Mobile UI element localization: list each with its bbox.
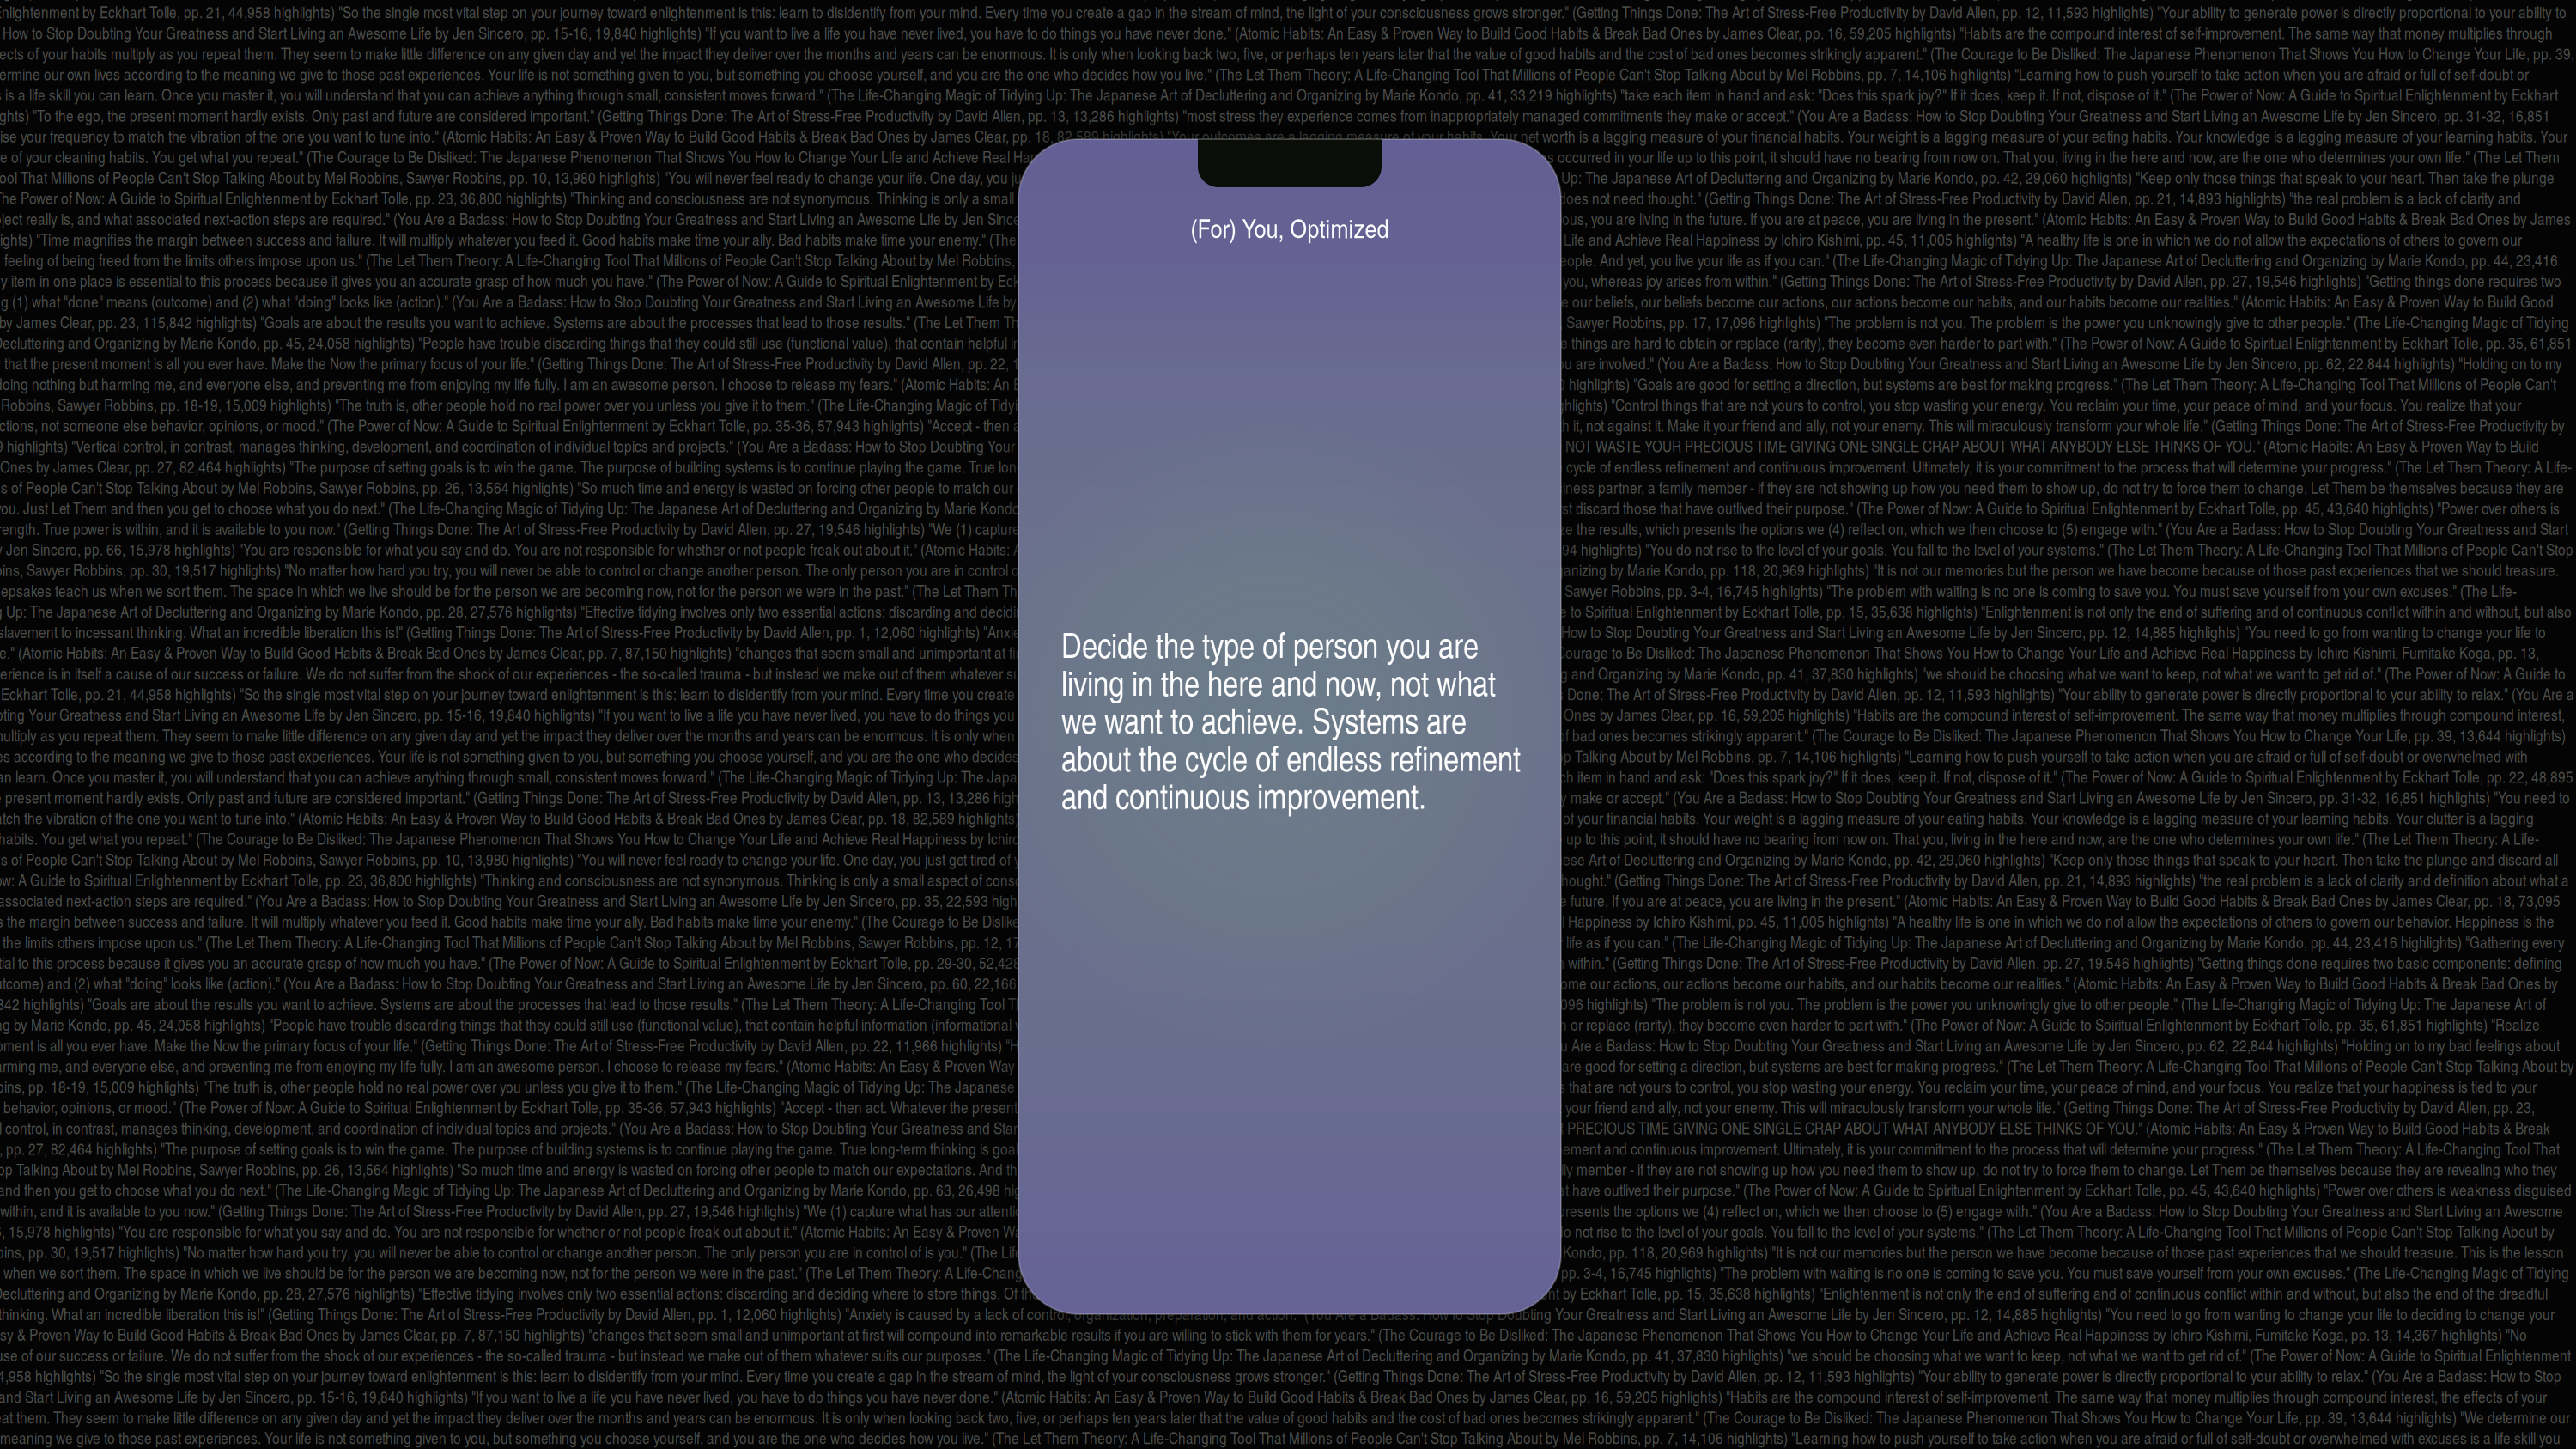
button[interactable]: (For) You, Optimized	[1105, 213, 1474, 242]
staticText: (For) You, Optimized	[1191, 210, 1389, 246]
staticText: Decide the type of person you are living…	[1061, 625, 1521, 814]
staticText: ut by Mel Robbins, Sawyer Robbins, pp. 3…	[0, 0, 2574, 1449]
